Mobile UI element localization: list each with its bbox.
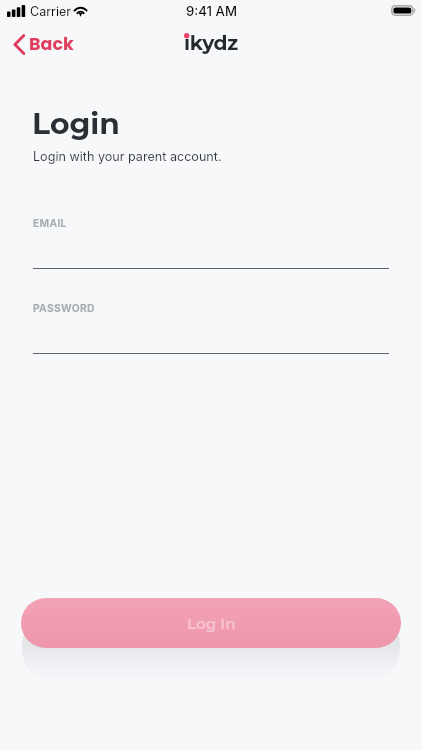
- staticText: 9:41 AM: [186, 3, 237, 19]
- button[interactable]: Log In: [21, 598, 401, 648]
- staticText: Carrier: [30, 4, 71, 19]
- staticText: Login with your parent account.: [33, 149, 222, 164]
- staticText: EMAIL: [33, 217, 67, 229]
- staticText: Back: [29, 32, 74, 57]
- staticText: ikydz: [184, 30, 238, 55]
- staticText: PASSWORD: [33, 302, 95, 314]
- staticText: Log In: [187, 614, 236, 632]
- button[interactable]: Back: [9, 29, 78, 60]
- staticText: Login: [32, 105, 120, 141]
